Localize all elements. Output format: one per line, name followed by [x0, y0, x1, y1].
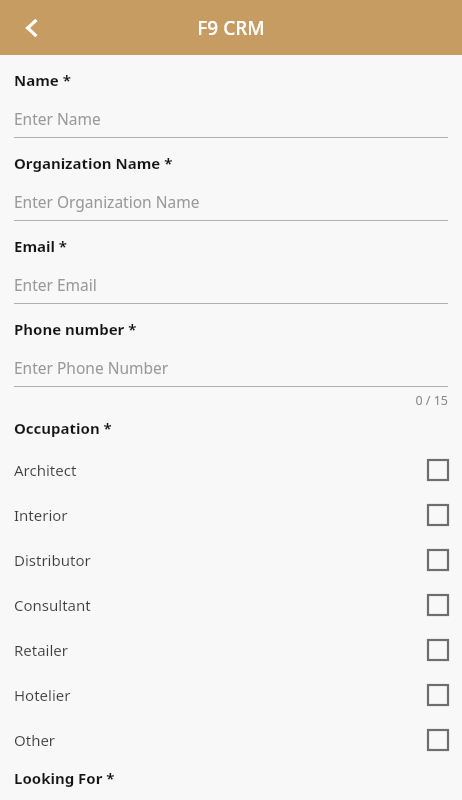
button[interactable]: Retailer [14, 627, 448, 672]
staticText: Name * [14, 70, 71, 90]
staticText: Other [14, 730, 428, 750]
staticText: 0 / 15 [14, 392, 448, 409]
button[interactable]: Hotelier [14, 672, 448, 717]
staticText: Occupation * [14, 418, 112, 438]
button[interactable]: Back [12, 7, 54, 49]
staticText: Hotelier [14, 685, 428, 705]
staticText: Phone number * [14, 319, 137, 339]
staticText: Email * [14, 236, 67, 256]
staticText: Enter Name [14, 108, 101, 129]
staticText: Architect [14, 460, 428, 480]
staticText: Interior [14, 505, 428, 525]
button[interactable]: Distributor [14, 537, 448, 582]
button[interactable]: Consultant [14, 582, 448, 627]
staticText: Organization Name * [14, 153, 173, 173]
button[interactable]: Architect [14, 447, 448, 492]
staticText: Consultant [14, 595, 428, 615]
staticText: F9 CRM [197, 15, 265, 41]
button[interactable]: Interior [14, 492, 448, 537]
button[interactable]: Other [14, 717, 448, 762]
staticText: Looking For * [14, 768, 115, 788]
staticText: Enter Phone Number [14, 357, 169, 378]
button[interactable]: Enter Organization Name [14, 189, 448, 213]
button[interactable]: Enter Phone Number [14, 355, 448, 379]
button[interactable]: Enter Name [14, 106, 448, 130]
button[interactable]: Enter Email [14, 272, 448, 296]
staticText: Enter Email [14, 274, 97, 295]
staticText: Retailer [14, 640, 428, 660]
staticText: Distributor [14, 550, 428, 570]
staticText: Enter Organization Name [14, 191, 200, 212]
